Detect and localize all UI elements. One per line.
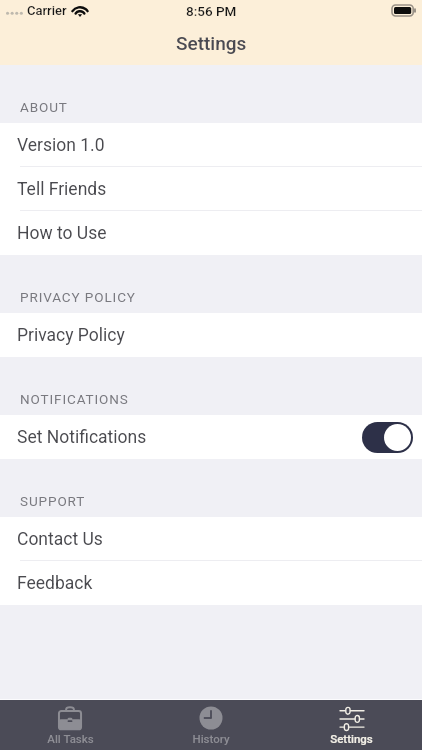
button[interactable]: Notifications toggle — [362, 422, 413, 453]
staticText: Contact Us — [17, 529, 103, 550]
button[interactable]: Settings — [281, 700, 422, 750]
staticText: Settings — [176, 32, 247, 54]
staticText: Tell Friends — [17, 179, 107, 200]
staticText: Carrier — [27, 3, 67, 18]
staticText: History — [192, 732, 230, 745]
staticText: Version 1.0 — [17, 135, 105, 156]
button[interactable]: All Tasks — [0, 700, 140, 750]
button[interactable]: History — [140, 700, 281, 750]
staticText: All Tasks — [47, 732, 94, 745]
staticText: How to Use — [17, 223, 107, 244]
staticText: Set Notifications — [17, 427, 147, 448]
staticText: PRIVACY POLICY — [20, 289, 136, 305]
button[interactable]: Privacy Policy — [0, 313, 422, 357]
staticText: 8:56 PM — [186, 3, 237, 19]
button[interactable]: How to Use — [0, 211, 422, 255]
button[interactable]: Set Notifications — [0, 415, 422, 459]
button[interactable]: Version 1.0 — [0, 123, 422, 167]
staticText: NOTIFICATIONS — [20, 391, 129, 407]
staticText: ABOUT — [20, 99, 68, 115]
staticText: Feedback — [17, 573, 93, 594]
staticText: SUPPORT — [20, 493, 86, 509]
button[interactable]: Tell Friends — [0, 167, 422, 211]
button[interactable]: Feedback — [0, 561, 422, 605]
staticText: Settings — [330, 732, 373, 745]
staticText: Privacy Policy — [17, 325, 125, 346]
button[interactable]: Contact Us — [0, 517, 422, 561]
